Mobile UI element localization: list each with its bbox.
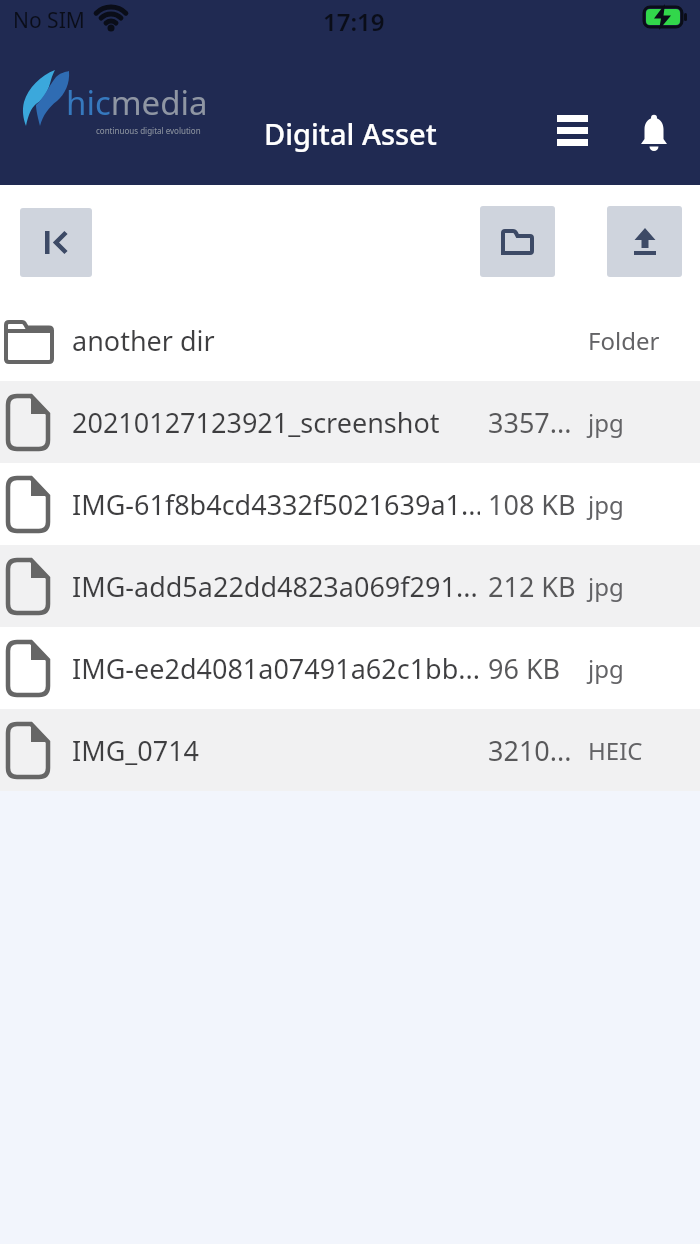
staticText: Folder: [588, 324, 660, 357]
button[interactable]: [641, 115, 667, 147]
staticText: jpg: [588, 570, 624, 603]
button[interactable]: [607, 206, 682, 277]
staticText: hicmedia: [66, 80, 208, 125]
staticText: IMG-61f8b4cd4332f5021639a1...: [72, 486, 480, 523]
staticText: another dir: [72, 322, 215, 359]
staticText: IMG-add5a22dd4823a069f291...: [72, 568, 478, 605]
staticText: jpg: [588, 652, 624, 685]
button[interactable]: [480, 206, 555, 277]
staticText: IMG_0714: [72, 732, 200, 769]
button[interactable]: IMG_0714: [0, 709, 700, 791]
staticText: 3210...: [488, 732, 572, 769]
staticText: continuous digital evolution: [96, 125, 201, 136]
button[interactable]: IMG-add5a22dd4823a069f291...: [0, 545, 700, 627]
staticText: Digital Asset: [264, 114, 437, 153]
staticText: 17:19: [323, 5, 385, 38]
staticText: 96 KB: [488, 650, 561, 687]
button[interactable]: IMG-ee2d4081a07491a62c1bb...: [0, 627, 700, 709]
staticText: jpg: [588, 406, 624, 439]
staticText: 3357...: [488, 404, 572, 441]
button[interactable]: [20, 208, 92, 277]
staticText: HEIC: [588, 734, 643, 767]
button[interactable]: IMG-61f8b4cd4332f5021639a1...: [0, 463, 700, 545]
button[interactable]: another dir: [0, 299, 700, 381]
staticText: 212 KB: [488, 568, 576, 605]
staticText: 20210127123921_screenshot: [72, 404, 440, 441]
button[interactable]: 20210127123921_screenshot: [0, 381, 700, 463]
staticText: IMG-ee2d4081a07491a62c1bb...: [72, 650, 480, 687]
staticText: 108 KB: [488, 486, 576, 523]
button[interactable]: [557, 115, 588, 146]
staticText: No SIM: [13, 6, 85, 35]
staticText: jpg: [588, 488, 624, 521]
